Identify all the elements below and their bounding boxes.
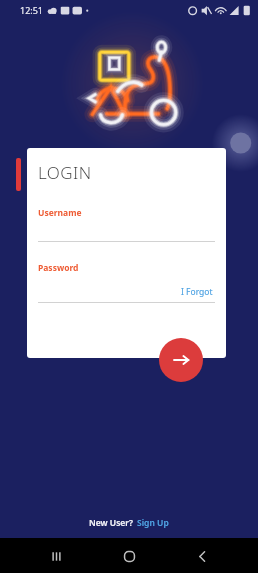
- button[interactable]: Recent apps: [39, 539, 73, 573]
- staticText: Password: [38, 262, 79, 274]
- button[interactable]: I Forgot: [179, 284, 215, 300]
- staticText: New User?: [89, 517, 133, 529]
- staticText: Sign Up: [137, 517, 169, 529]
- staticText: 12:51: [20, 4, 44, 16]
- staticText: I Forgot: [181, 286, 213, 298]
- button[interactable]: Sign Up: [137, 517, 169, 529]
- other: Delivery scooter logo: [72, 34, 188, 132]
- button[interactable]: Home: [112, 539, 146, 573]
- button[interactable]: Submit login: [159, 338, 203, 382]
- button[interactable]: Back: [185, 539, 219, 573]
- staticText: Username: [38, 207, 82, 219]
- staticText: LOGIN: [38, 161, 92, 184]
